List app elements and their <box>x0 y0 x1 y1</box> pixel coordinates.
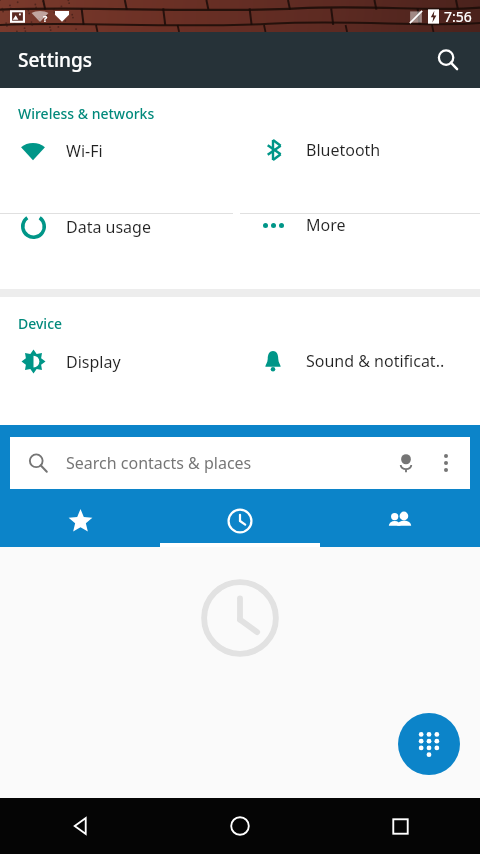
button[interactable]: Recent apps <box>320 798 480 854</box>
button[interactable]: Voice search <box>386 443 426 483</box>
button[interactable]: Recents <box>160 499 320 543</box>
staticText: More <box>306 214 346 236</box>
button[interactable]: Search <box>426 38 470 82</box>
button[interactable]: Sound & notificat.. <box>240 349 480 373</box>
button[interactable]: Search contacts & places <box>10 437 470 489</box>
staticText: Bluetooth <box>306 139 381 161</box>
button[interactable]: Back <box>0 798 160 854</box>
staticText: Data usage <box>66 216 151 238</box>
button[interactable]: Contacts <box>320 499 480 543</box>
button[interactable]: Bluetooth <box>240 138 480 162</box>
button[interactable]: Wi-Fi <box>0 138 240 164</box>
button[interactable]: Dialpad <box>398 713 460 775</box>
staticText: Sound & notificat.. <box>306 350 445 372</box>
staticText: Wireless & networks <box>18 104 155 123</box>
button[interactable]: Display <box>0 349 240 374</box>
staticText: Wi-Fi <box>66 140 103 162</box>
button[interactable]: Favorites <box>0 499 160 543</box>
staticText: Device <box>18 314 63 333</box>
button[interactable]: Data usage <box>0 214 240 239</box>
button[interactable]: More <box>240 214 480 236</box>
staticText: Settings <box>18 47 92 73</box>
button[interactable]: Home <box>160 798 320 854</box>
staticText: Search contacts & places <box>66 452 252 474</box>
button[interactable]: More options <box>426 443 466 483</box>
staticText: 7:56 <box>444 7 472 26</box>
staticText: Display <box>66 351 121 373</box>
staticText: ? <box>43 12 48 24</box>
